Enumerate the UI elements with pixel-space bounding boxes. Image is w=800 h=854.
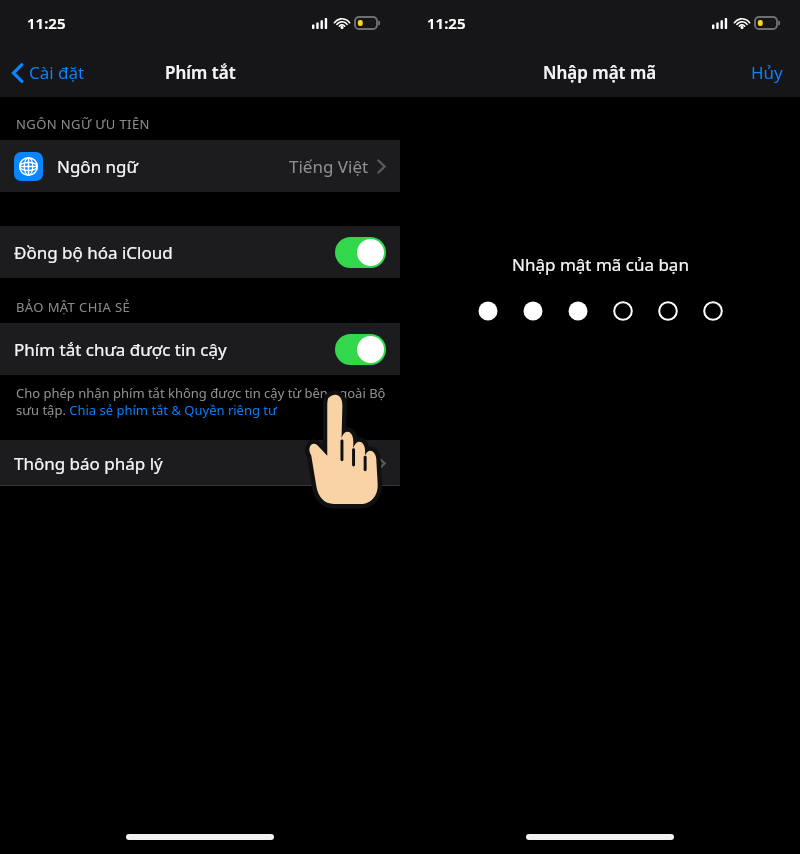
staticText: 11:25 [427, 13, 466, 33]
staticText: Tiếng Việt [289, 155, 369, 178]
staticText: Nhập mật mã [543, 61, 657, 84]
staticText: 11:25 [27, 13, 66, 33]
staticText: Cho phép nhận phím tắt không được tin cậ… [16, 384, 386, 419]
staticText: Phím tắt [165, 61, 236, 84]
staticText: Đồng bộ hóa iCloud [14, 241, 173, 264]
staticText: Hủy [751, 61, 783, 84]
button[interactable]: Phím tắt chưa được tin cậy [0, 323, 400, 375]
staticText: Thông báo pháp lý [14, 452, 163, 475]
staticText: Cài đặt [29, 61, 85, 84]
button[interactable]: Đồng bộ hóa iCloud [0, 226, 400, 278]
staticText: Phím tắt chưa được tin cậy [14, 338, 227, 361]
button[interactable]: Cài đặt [8, 57, 89, 88]
staticText: BẢO MẬT CHIA SẺ [16, 298, 131, 316]
staticText: Nhập mật mã của bạn [512, 253, 689, 276]
button[interactable]: Thông báo pháp lý [0, 440, 400, 486]
staticText: Ngôn ngữ [57, 155, 139, 178]
button[interactable]: Toggle on [335, 334, 386, 365]
staticText: NGÔN NGỮ ƯU TIÊN [16, 115, 150, 133]
button[interactable]: Toggle on [335, 237, 386, 268]
button[interactable]: Hủy [746, 56, 788, 89]
button[interactable]: Ngôn ngữ [0, 140, 400, 192]
